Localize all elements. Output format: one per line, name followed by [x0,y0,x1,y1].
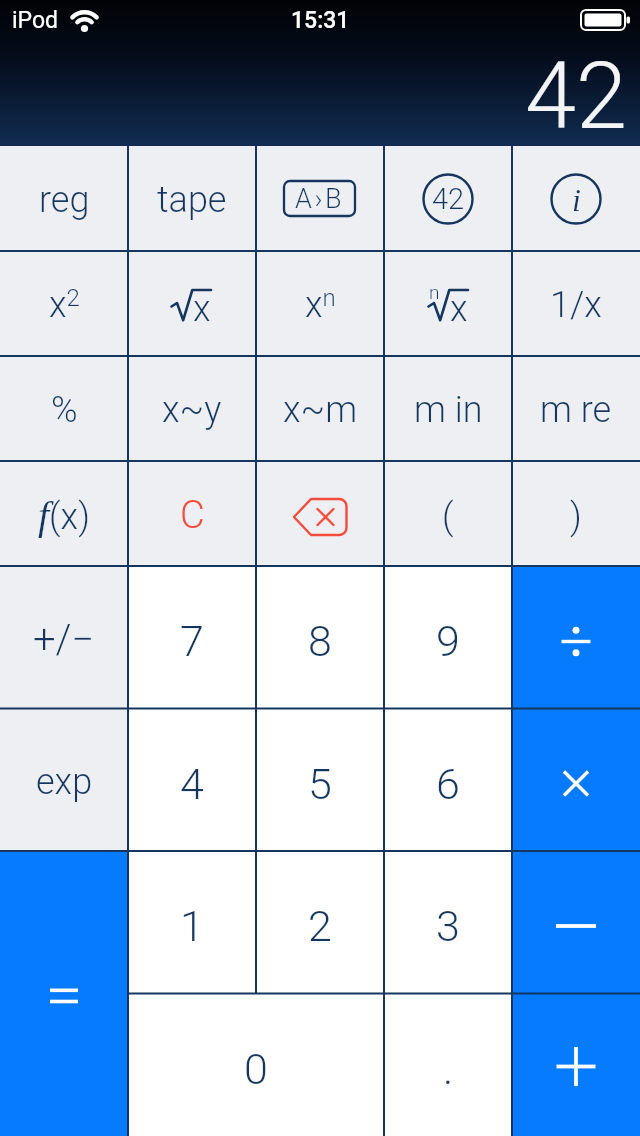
staticText: reg [39,179,90,221]
staticText: 7 [180,616,204,666]
staticText: x~y [162,389,222,431]
staticText: A›B [295,183,345,215]
staticText: ( [442,496,454,538]
staticText: C [180,493,205,538]
staticText: xn [305,284,336,326]
staticText: 42 [432,182,465,216]
staticText: % [51,389,78,431]
staticText: i [572,182,581,217]
staticText: ) [570,496,582,538]
staticText: 9 [436,616,460,666]
staticText: 1 [180,901,204,951]
staticText: x~m [283,389,358,431]
staticText: f(x) [38,493,90,537]
staticText: 8 [308,616,332,666]
staticText: 42 [525,43,628,151]
staticText: 15:31 [291,7,350,34]
staticText: m re [540,389,612,431]
staticText: 0 [244,1044,268,1094]
staticText: iPod [12,7,59,34]
staticText: x [193,288,211,330]
staticText: x2 [49,284,80,326]
staticText: +/− [33,616,95,663]
staticText: tape [157,179,227,221]
staticText: 2 [308,901,332,951]
staticText: x [450,288,468,330]
staticText: . [443,1044,454,1094]
staticText: 4 [180,759,204,809]
staticText: exp [36,761,93,803]
staticText: 6 [436,759,460,809]
staticText: n [429,281,440,303]
staticText: 5 [308,759,332,809]
staticText: 1/x [550,284,602,326]
staticText: 3 [436,901,460,951]
staticText: m in [414,389,483,431]
